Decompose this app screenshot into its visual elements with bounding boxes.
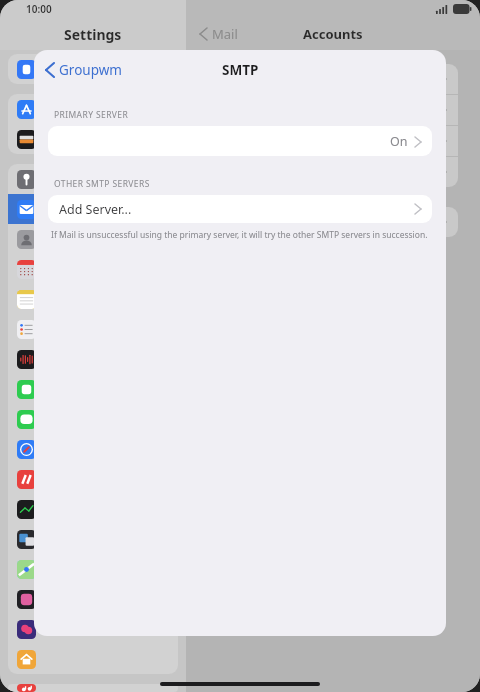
button[interactable]	[208, 207, 458, 237]
button[interactable]	[8, 194, 178, 224]
button[interactable]	[8, 494, 178, 524]
button[interactable]	[8, 684, 178, 692]
button[interactable]	[208, 157, 458, 187]
staticText: Add Server...	[59, 201, 132, 218]
staticText: 10:00	[26, 2, 52, 16]
button[interactable]	[8, 614, 178, 644]
button[interactable]	[8, 554, 178, 584]
button[interactable]	[8, 344, 178, 374]
button[interactable]	[8, 224, 178, 254]
button[interactable]	[8, 584, 178, 614]
button[interactable]	[8, 164, 178, 194]
button[interactable]	[208, 95, 458, 125]
button[interactable]	[8, 54, 178, 84]
button[interactable]	[8, 464, 178, 494]
staticText: Settings	[64, 25, 122, 44]
staticText: Groupwm	[59, 61, 122, 79]
staticText: If Mail is unsuccessful using the primar…	[51, 229, 428, 241]
button[interactable]	[8, 524, 178, 554]
button[interactable]	[8, 254, 178, 284]
staticText: Mail	[212, 25, 238, 43]
button[interactable]	[8, 94, 178, 124]
button[interactable]	[8, 404, 178, 434]
button[interactable]	[8, 374, 178, 404]
button[interactable]	[8, 434, 178, 464]
button[interactable]	[8, 284, 178, 314]
button[interactable]	[8, 124, 178, 154]
button[interactable]	[208, 126, 458, 156]
staticText: PRIMARY SERVER	[54, 109, 129, 121]
staticText: Accounts	[303, 25, 363, 43]
button[interactable]	[8, 644, 178, 674]
staticText: SMTP	[222, 61, 259, 79]
button[interactable]: Groupwm	[42, 57, 126, 83]
button[interactable]	[8, 314, 178, 344]
button[interactable]: On	[48, 126, 432, 156]
staticText: On	[390, 133, 408, 150]
button[interactable]: Add Server...	[48, 195, 432, 223]
staticText: OTHER SMTP SERVERS	[54, 178, 150, 190]
button[interactable]	[208, 64, 458, 94]
button[interactable]: Mail	[200, 25, 238, 43]
